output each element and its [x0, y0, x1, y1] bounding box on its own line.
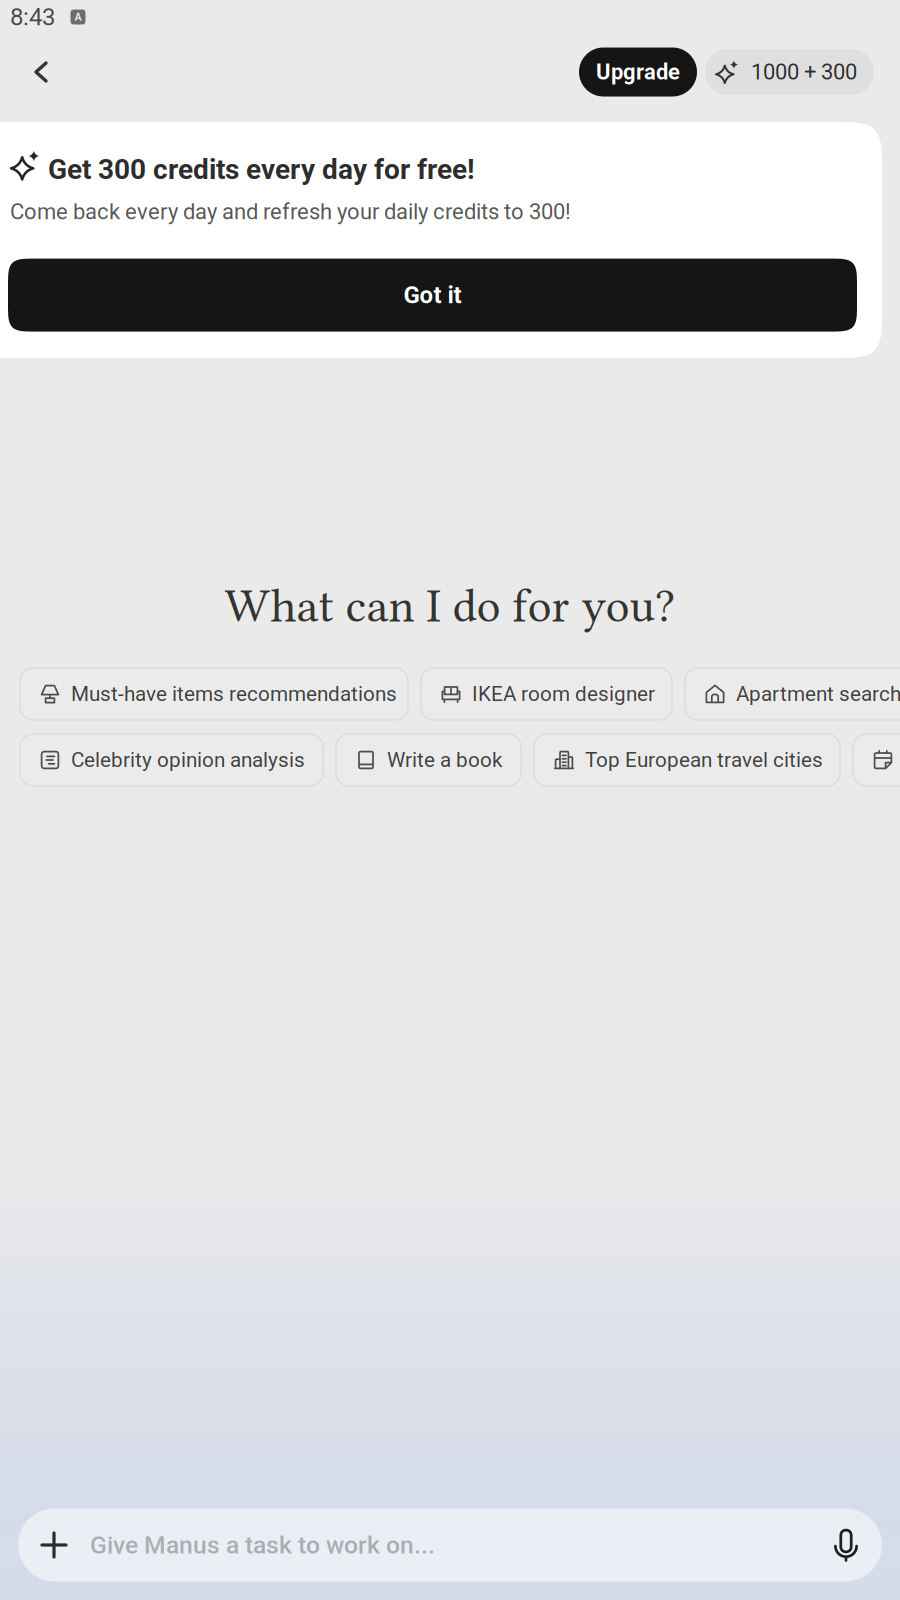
- staticText: A: [74, 11, 81, 23]
- button[interactable]: Must-have items recommendations: [20, 668, 408, 720]
- staticText: IKEA room designer: [472, 682, 655, 706]
- staticText: 1000 + 300: [751, 59, 857, 85]
- staticText: Give Manus a task to work on...: [90, 1530, 435, 1559]
- staticText: Upgrade: [596, 59, 680, 85]
- staticText: Apartment search: [736, 682, 900, 706]
- staticText: Top European travel cities: [585, 748, 823, 772]
- button[interactable]: Upgrade: [579, 47, 697, 96]
- button[interactable]: 1000 + 300: [705, 49, 874, 95]
- button[interactable]: Write a book: [336, 734, 521, 786]
- button[interactable]: Celebrity opinion analysis: [20, 734, 323, 786]
- button[interactable]: Got it: [8, 259, 857, 332]
- button[interactable]: Top European travel cities: [534, 734, 840, 786]
- staticText: Must-have items recommendations: [71, 682, 397, 706]
- staticText: Celebrity opinion analysis: [71, 748, 305, 772]
- staticText: 8:43: [10, 3, 55, 31]
- staticText: Come back every day and refresh your dai…: [10, 199, 571, 225]
- staticText: Write a book: [387, 748, 502, 772]
- staticText: What can I do for you?: [224, 579, 675, 633]
- staticText: Got it: [403, 281, 461, 309]
- button[interactable]: Daily schedule: [853, 734, 900, 786]
- button[interactable]: IKEA room designer: [421, 668, 672, 720]
- button[interactable]: Back: [6, 37, 76, 107]
- button[interactable]: Give Manus a task to work on...: [18, 1508, 882, 1581]
- button[interactable]: Apartment search: [685, 668, 900, 720]
- staticText: Get 300 credits every day for free!: [48, 153, 475, 186]
